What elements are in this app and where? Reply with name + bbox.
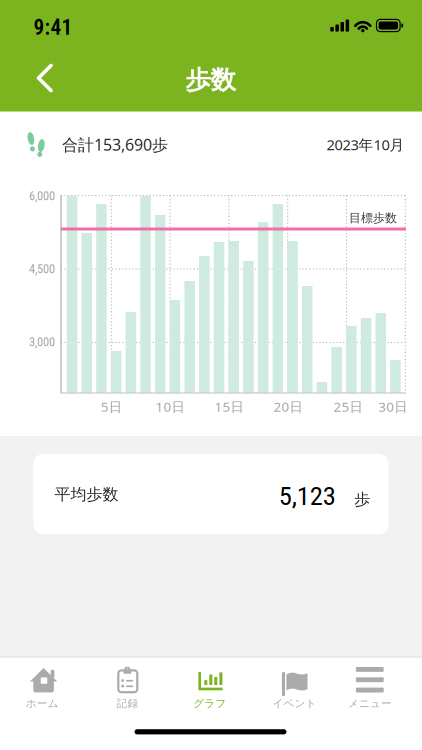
staticText: 2023年10月 <box>326 135 404 154</box>
staticText: 5,123 <box>279 480 336 512</box>
staticText: 6,000 <box>29 189 55 203</box>
staticText: 4,500 <box>29 262 55 276</box>
staticText: 9:41 <box>33 15 72 40</box>
staticText: 30日 <box>378 398 407 415</box>
staticText: ホーム <box>26 697 59 710</box>
button[interactable]: 記録 <box>88 658 168 710</box>
staticText: イベント <box>273 697 317 710</box>
staticText: 合計153,690歩 <box>62 134 168 155</box>
staticText: 目標歩数 <box>349 211 397 225</box>
staticText: 記録 <box>117 697 139 710</box>
staticText: 5日 <box>101 398 122 415</box>
staticText: 25日 <box>333 398 362 415</box>
staticText: 3,000 <box>29 335 55 349</box>
staticText: メニュー <box>348 697 392 710</box>
staticText: 10日 <box>155 398 184 415</box>
button[interactable]: Back <box>22 63 66 93</box>
staticText: 歩数 <box>185 64 235 95</box>
staticText: 20日 <box>273 398 302 415</box>
button[interactable]: ホーム <box>2 658 82 710</box>
staticText: 15日 <box>214 398 243 415</box>
staticText: 平均歩数 <box>55 485 119 504</box>
button[interactable]: メニュー <box>330 658 410 710</box>
button[interactable]: イベント <box>255 658 335 710</box>
button[interactable]: グラフ <box>170 658 250 710</box>
staticText: 歩 <box>354 490 370 509</box>
staticText: グラフ <box>193 697 226 710</box>
